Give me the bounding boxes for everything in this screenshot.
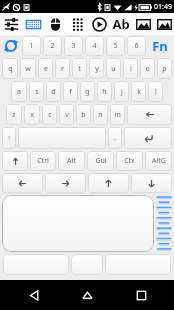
staticText: j bbox=[121, 87, 123, 97]
button[interactable]: o bbox=[140, 58, 155, 79]
button[interactable]: h bbox=[97, 81, 112, 102]
staticText: g bbox=[85, 87, 90, 97]
button[interactable]: e bbox=[38, 58, 53, 79]
button[interactable]: Settings bbox=[0, 13, 22, 35]
button[interactable]: 6 bbox=[127, 36, 146, 56]
button[interactable]: Image bbox=[132, 13, 154, 35]
button[interactable]: Mouse bbox=[44, 13, 66, 35]
button[interactable]: z bbox=[6, 104, 22, 125]
button[interactable]: Numpad bbox=[66, 13, 88, 35]
staticText: r bbox=[61, 64, 64, 74]
button[interactable]: 1 bbox=[22, 36, 41, 56]
button[interactable]: , bbox=[108, 127, 122, 149]
button[interactable]: Back bbox=[14, 280, 54, 310]
button[interactable]: 4 bbox=[85, 36, 104, 56]
staticText: 5 bbox=[113, 41, 118, 51]
button[interactable]: t bbox=[72, 58, 87, 79]
staticText: Fn bbox=[152, 37, 168, 55]
button[interactable]: Enter bbox=[124, 127, 172, 149]
button[interactable]: Gui bbox=[87, 151, 114, 171]
button[interactable]: Alt bbox=[58, 151, 85, 171]
button[interactable]: Space bbox=[18, 127, 106, 149]
button[interactable]: Down bbox=[131, 173, 172, 193]
staticText: 01:49 bbox=[154, 2, 172, 12]
button[interactable]: ! bbox=[2, 127, 16, 149]
staticText: 6 bbox=[134, 41, 139, 51]
button[interactable]: Fn bbox=[147, 36, 173, 56]
button[interactable]: g bbox=[80, 81, 95, 102]
staticText: q bbox=[8, 64, 13, 74]
button[interactable]: Right bbox=[45, 173, 86, 193]
button[interactable]: s bbox=[29, 81, 44, 102]
staticText: ! bbox=[8, 134, 10, 142]
button[interactable]: x bbox=[24, 104, 40, 125]
button[interactable]: n bbox=[93, 104, 108, 125]
staticText: x bbox=[30, 110, 34, 120]
button[interactable]: k bbox=[131, 81, 146, 102]
button[interactable]: l bbox=[148, 81, 163, 102]
button[interactable]: Ctrl bbox=[30, 151, 56, 171]
staticText: n bbox=[98, 110, 103, 120]
staticText: Ab bbox=[112, 15, 130, 33]
staticText: k bbox=[137, 87, 141, 97]
button[interactable]: r bbox=[55, 58, 70, 79]
staticText: f bbox=[69, 87, 72, 97]
button[interactable]: AltG bbox=[145, 151, 172, 171]
staticText: c bbox=[48, 110, 52, 120]
staticText: Ctrl bbox=[37, 156, 49, 166]
staticText: 1 bbox=[29, 41, 34, 51]
button[interactable]: Sync bbox=[1, 36, 21, 56]
button[interactable]: u bbox=[106, 58, 121, 79]
staticText: , bbox=[114, 134, 116, 142]
staticText: 3 bbox=[71, 41, 76, 51]
button[interactable]: Backspace bbox=[127, 104, 172, 125]
button[interactable]: 3 bbox=[64, 36, 83, 56]
button[interactable]: b bbox=[76, 104, 91, 125]
staticText: h bbox=[102, 87, 107, 97]
button[interactable]: Left bbox=[2, 173, 43, 193]
staticText: Ctx bbox=[124, 156, 135, 166]
button[interactable]: Touchpad bbox=[2, 195, 154, 252]
staticText: t bbox=[78, 64, 81, 74]
button[interactable]: y bbox=[89, 58, 104, 79]
button[interactable]: j bbox=[114, 81, 129, 102]
staticText: y bbox=[95, 64, 99, 74]
button[interactable]: Right click bbox=[105, 254, 171, 275]
button[interactable]: i bbox=[123, 58, 138, 79]
button[interactable]: f bbox=[63, 81, 78, 102]
staticText: z bbox=[12, 110, 16, 120]
staticText: o bbox=[145, 64, 150, 74]
button[interactable]: p bbox=[157, 58, 172, 79]
button[interactable]: 2 bbox=[43, 36, 62, 56]
button[interactable]: a bbox=[11, 81, 27, 102]
button[interactable]: Shift bbox=[2, 151, 28, 171]
staticText: Alt bbox=[67, 156, 76, 166]
button[interactable]: Home bbox=[67, 280, 107, 310]
button[interactable]: More bbox=[154, 13, 174, 35]
button[interactable]: Ab bbox=[110, 13, 132, 35]
button[interactable]: v bbox=[59, 104, 74, 125]
button[interactable]: Scroll bbox=[156, 195, 172, 252]
staticText: b bbox=[81, 110, 86, 120]
staticText: l bbox=[155, 87, 157, 97]
staticText: w bbox=[25, 64, 31, 74]
button[interactable]: d bbox=[46, 81, 61, 102]
button[interactable]: Up bbox=[88, 173, 129, 193]
button[interactable]: Middle click bbox=[71, 254, 103, 275]
staticText: p bbox=[162, 64, 167, 74]
button[interactable]: Ctx bbox=[116, 151, 143, 171]
button[interactable]: Recents bbox=[121, 280, 161, 310]
staticText: i bbox=[130, 64, 132, 74]
button[interactable]: c bbox=[42, 104, 57, 125]
button[interactable]: w bbox=[20, 58, 36, 79]
button[interactable]: Media bbox=[88, 13, 110, 35]
button[interactable]: 5 bbox=[106, 36, 125, 56]
staticText: 2 bbox=[50, 41, 55, 51]
button[interactable]: m bbox=[110, 104, 125, 125]
button[interactable]: Keyboard bbox=[22, 13, 44, 35]
staticText: u bbox=[111, 64, 116, 74]
staticText: Gui bbox=[95, 156, 107, 166]
button[interactable]: q bbox=[2, 58, 18, 79]
staticText: m bbox=[114, 110, 121, 120]
button[interactable]: Left click bbox=[3, 254, 69, 275]
